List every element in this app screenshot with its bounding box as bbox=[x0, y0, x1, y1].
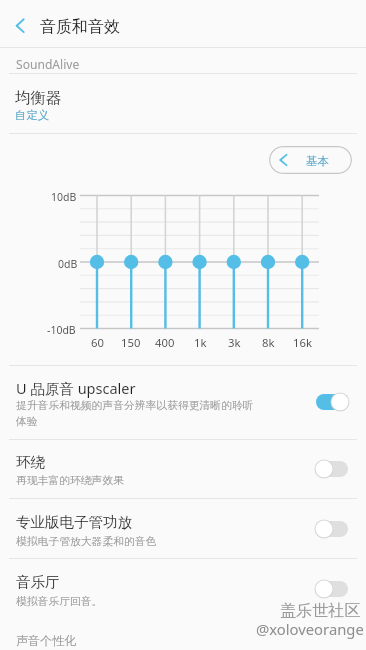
staticText: 体验 bbox=[16, 415, 38, 429]
staticText: 盖乐世社区 bbox=[280, 600, 361, 620]
staticText: U 品原音 upscaler bbox=[16, 378, 136, 398]
staticText: 音乐厅 bbox=[16, 573, 60, 591]
staticText: 基本 bbox=[306, 154, 330, 169]
button[interactable]: 基本 bbox=[269, 146, 352, 174]
button[interactable] bbox=[0, 559, 366, 617]
staticText: 3k bbox=[228, 335, 241, 350]
button[interactable]: Back bbox=[0, 0, 40, 47]
staticText: 模拟音乐厅回音。 bbox=[16, 595, 103, 609]
staticText: -10dB bbox=[47, 323, 76, 337]
staticText: 均衡器 bbox=[15, 88, 62, 108]
staticText: SoundAlive bbox=[16, 56, 80, 72]
button[interactable]: Turn on 专业版电子管功放 bbox=[316, 518, 350, 540]
staticText: 自定义 bbox=[15, 108, 50, 122]
staticText: 150 bbox=[121, 335, 141, 350]
staticText: 60 bbox=[91, 335, 104, 350]
staticText: 音质和音效 bbox=[40, 17, 120, 37]
staticText: 1k bbox=[194, 335, 207, 350]
staticText: @xoloveorange bbox=[256, 619, 364, 639]
staticText: 环绕 bbox=[16, 453, 45, 471]
staticText: 提升音乐和视频的声音分辨率以获得更清晰的聆听 bbox=[16, 399, 254, 413]
staticText: 声音个性化 bbox=[16, 633, 77, 648]
staticText: 0dB bbox=[58, 257, 78, 271]
staticText: 专业版电子管功放 bbox=[16, 513, 132, 531]
staticText: 16k bbox=[293, 335, 312, 350]
button[interactable]: Turn on 音乐厅 bbox=[316, 578, 350, 600]
staticText: 400 bbox=[155, 335, 175, 350]
button[interactable]: Turn off U 品原音 upscaler bbox=[316, 391, 350, 413]
staticText: 8k bbox=[262, 335, 275, 350]
staticText: 再现丰富的环绕声效果 bbox=[16, 474, 124, 488]
staticText: 10dB bbox=[51, 190, 77, 204]
button[interactable] bbox=[0, 366, 366, 439]
button[interactable] bbox=[0, 499, 366, 558]
button[interactable]: Turn on 环绕 bbox=[316, 458, 350, 480]
staticText: 模拟电子管放大器柔和的音色 bbox=[16, 535, 157, 549]
button[interactable] bbox=[0, 440, 366, 498]
